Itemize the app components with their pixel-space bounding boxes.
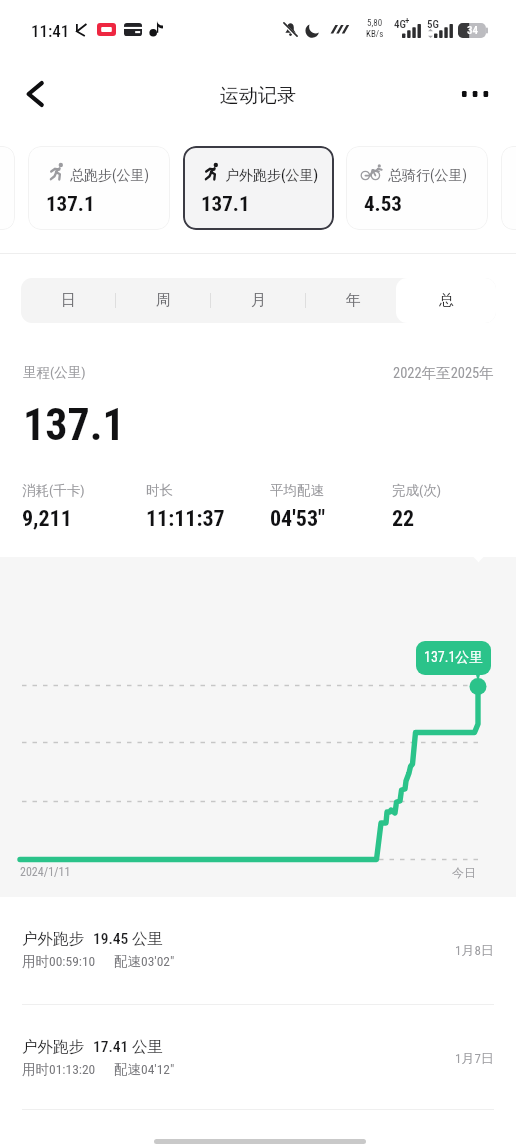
staticText: 平均配速 (270, 482, 324, 499)
staticText: 用时01:13:20 (22, 1061, 96, 1078)
staticText: KB/s (366, 29, 384, 40)
staticText: 5G (427, 18, 439, 31)
staticText: 1月7日 (455, 1050, 494, 1066)
button[interactable]: 年 (306, 278, 401, 323)
staticText: 年 (346, 291, 361, 310)
staticText: 137.1公里 (424, 649, 484, 667)
button[interactable]: 总 (396, 278, 496, 323)
staticText: 4.53 (364, 192, 402, 217)
staticText: 户外跑步 (22, 929, 84, 949)
button[interactable]: Back (13, 72, 57, 116)
staticText: 04′53″ (270, 506, 326, 532)
staticText: 总 (439, 291, 454, 310)
button[interactable]: 月 (211, 278, 306, 323)
staticText: 137.1 (23, 399, 125, 451)
staticText: 2024/1/11 (20, 865, 71, 879)
button[interactable]: 户外跑步(公里) (183, 146, 334, 230)
staticText: 消耗(千卡) (22, 482, 85, 499)
staticText: 完成(次) (392, 482, 442, 499)
staticText: + (405, 16, 410, 27)
staticText: 34 (467, 24, 478, 37)
staticText: 配速03′02″ (114, 953, 175, 970)
button[interactable]: 周 (116, 278, 211, 323)
button[interactable]: 户外跑步 (0, 896, 516, 1004)
staticText: 9,211 (22, 506, 72, 532)
staticText: 1月8日 (455, 942, 494, 958)
staticText: 总骑行(公里) (388, 167, 467, 185)
staticText: 户外跑步 (22, 1037, 84, 1057)
staticText: 2022年至2025年 (393, 364, 494, 382)
staticText: 周 (156, 291, 171, 310)
staticText: 今日 (452, 865, 476, 880)
staticText: 总跑步(公里) (70, 167, 149, 185)
staticText: 用时00:59:10 (22, 953, 96, 970)
button[interactable]: 总跑步(公里) (28, 146, 170, 230)
staticText: 137.1 (46, 192, 95, 217)
staticText: 17.41 公里 (93, 1037, 163, 1057)
staticText: 22 (392, 506, 415, 532)
button[interactable]: 总骑行(公里) (346, 146, 488, 230)
staticText: 5,80 (367, 18, 383, 29)
staticText: 4G (394, 18, 406, 31)
staticText: 11:11:37 (146, 506, 225, 532)
staticText: 配速04′12″ (114, 1061, 175, 1078)
staticText: 11:41 (31, 21, 70, 41)
staticText: 里程(公里) (23, 364, 86, 381)
staticText: 户外跑步(公里) (225, 167, 318, 185)
staticText: 运动记录 (220, 84, 296, 108)
staticText: 日 (61, 291, 76, 310)
staticText: 月 (251, 291, 266, 310)
staticText: 137.1 (201, 192, 250, 217)
button[interactable]: 户外跑步 (0, 1004, 516, 1112)
button[interactable]: 日 (21, 278, 116, 323)
staticText: 19.45 公里 (93, 929, 163, 949)
staticText: 时长 (146, 482, 173, 499)
button[interactable]: More options (453, 72, 497, 116)
